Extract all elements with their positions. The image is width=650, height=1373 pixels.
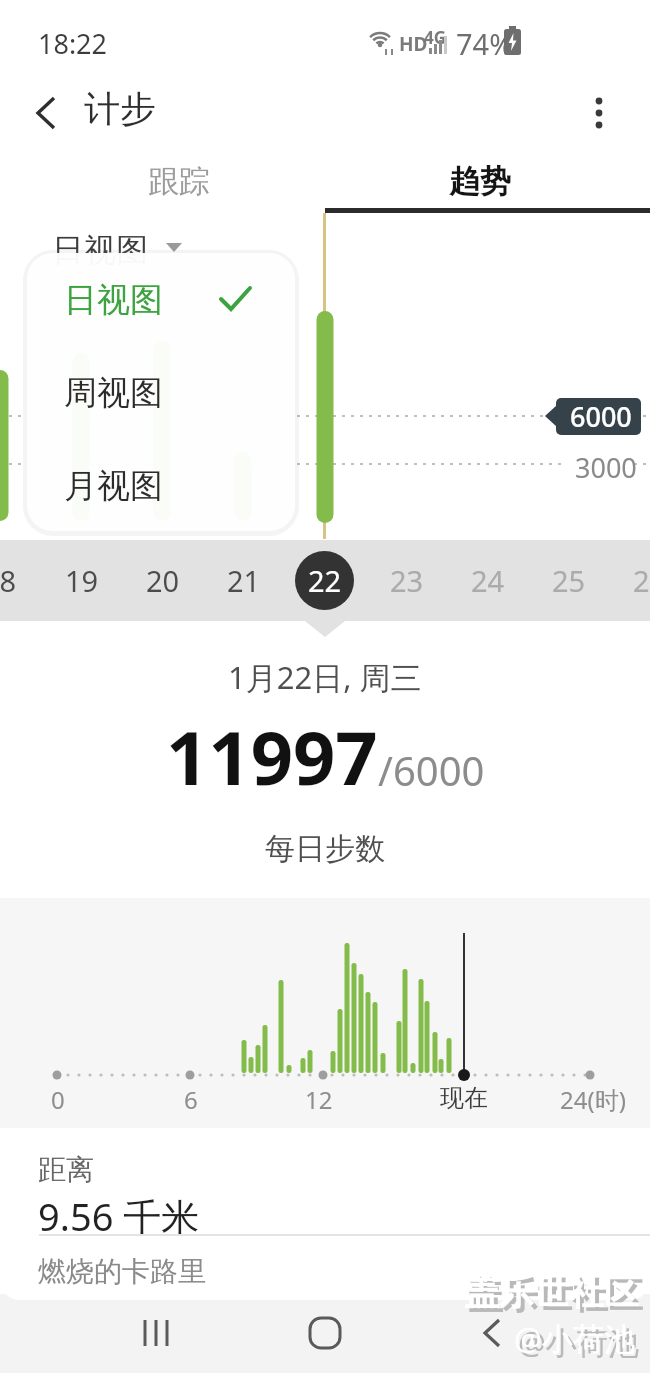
staticText: HD	[399, 31, 428, 57]
button[interactable]	[462, 1306, 522, 1366]
staticText: 1月22日, 周三	[228, 656, 422, 698]
staticText: 6	[184, 1083, 198, 1116]
staticText: 现在	[440, 1083, 488, 1113]
staticText: 日视图	[64, 279, 163, 321]
button[interactable]: 19	[41, 540, 122, 621]
staticText: 22	[308, 561, 342, 600]
button[interactable]: 18	[0, 540, 40, 621]
button[interactable]: 26	[609, 540, 650, 621]
staticText: /6000	[378, 743, 485, 797]
staticText: @小荷池	[518, 1321, 639, 1363]
button[interactable]: 25	[528, 540, 609, 621]
staticText: 18	[0, 561, 17, 600]
staticText: 周视图	[64, 372, 163, 414]
button[interactable]: 24	[447, 540, 528, 621]
button[interactable]: 月视图	[27, 439, 295, 531]
button[interactable]: 20	[122, 540, 203, 621]
staticText: 0	[51, 1083, 65, 1116]
staticText: 3000	[575, 449, 637, 486]
button[interactable]: 22	[284, 540, 365, 621]
staticText: 24	[471, 561, 505, 600]
button[interactable]	[580, 92, 620, 136]
staticText: 18:22	[38, 25, 108, 62]
button[interactable]: 周视图	[27, 346, 295, 439]
button[interactable]	[295, 1306, 355, 1366]
button[interactable]: 23	[366, 540, 447, 621]
staticText: 每日步数	[265, 830, 385, 868]
staticText: 19	[65, 561, 99, 600]
button[interactable]: 趋势	[317, 150, 642, 213]
staticText: 计步	[84, 86, 156, 131]
staticText: 20	[146, 561, 180, 600]
staticText: 趋势	[449, 162, 511, 201]
staticText: 盖乐世社区	[464, 1270, 639, 1314]
staticText: 日视图	[52, 230, 148, 270]
staticText: 26	[633, 561, 650, 600]
staticText: 74%	[456, 24, 514, 63]
staticText: 11997	[166, 706, 378, 807]
staticText: 23	[390, 561, 424, 600]
staticText: 9.56 千米	[38, 1190, 200, 1242]
button[interactable]: 跟踪	[16, 150, 341, 213]
staticText: 盖乐世社区	[468, 1274, 643, 1318]
staticText: 燃烧的卡路里	[38, 1254, 206, 1289]
staticText: 12	[305, 1083, 333, 1116]
button[interactable]: 21	[203, 540, 284, 621]
staticText: 21	[227, 561, 261, 600]
staticText: 跟踪	[148, 162, 210, 201]
staticText: 25	[552, 561, 586, 600]
button[interactable]: 距离	[0, 1140, 650, 1236]
button[interactable]: 燃烧的卡路里	[0, 1236, 650, 1300]
button[interactable]	[24, 92, 68, 136]
button[interactable]: 日视图	[27, 253, 295, 346]
staticText: 月视图	[64, 465, 163, 507]
button[interactable]	[126, 1306, 186, 1366]
staticText: 距离	[38, 1152, 94, 1187]
staticText: 24(时)	[560, 1083, 626, 1116]
staticText: 6000	[570, 398, 632, 435]
staticText: @小荷池	[514, 1317, 635, 1359]
staticText: 4G	[424, 26, 447, 49]
